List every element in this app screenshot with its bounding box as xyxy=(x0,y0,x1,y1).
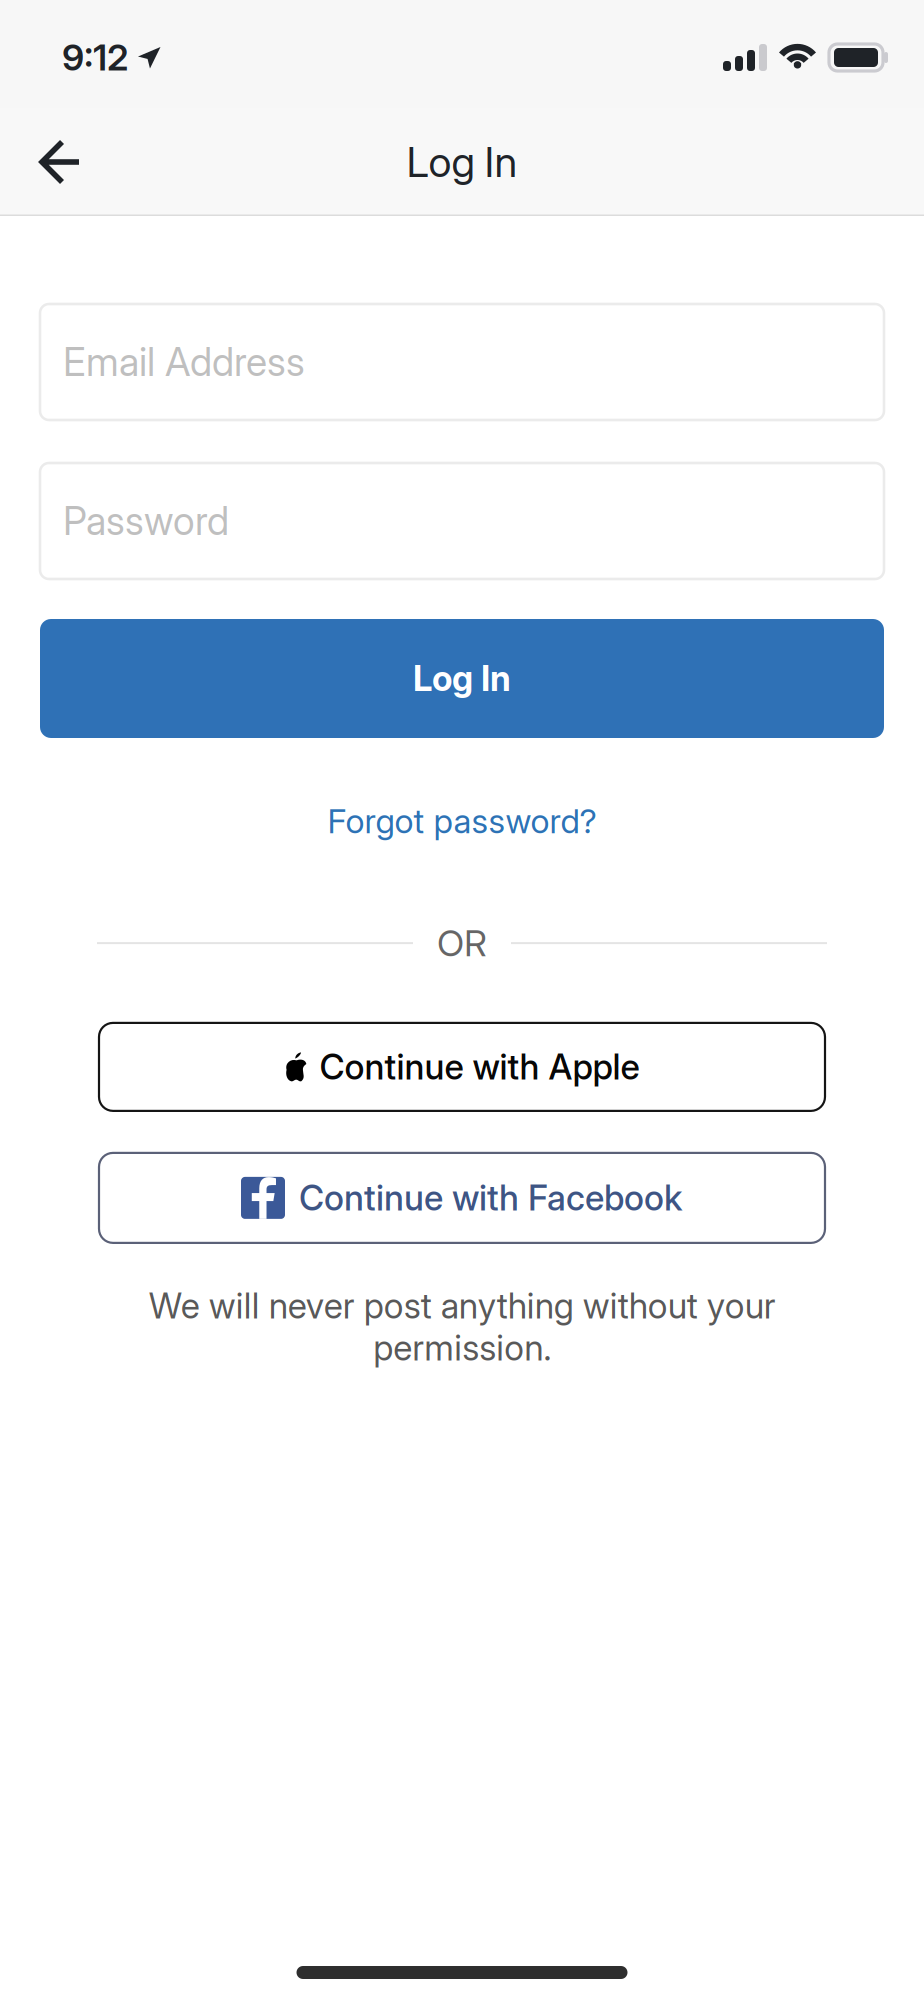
staticText: Log In xyxy=(413,657,511,699)
button[interactable]: Email Address xyxy=(40,304,884,420)
staticText: Forgot password? xyxy=(327,801,596,841)
button[interactable]: Continue with Facebook xyxy=(99,1153,825,1243)
staticText: Password xyxy=(63,498,229,544)
staticText: OR xyxy=(437,921,487,965)
staticText: 9:12 xyxy=(62,36,128,79)
button[interactable]: Forgot password? xyxy=(307,777,616,865)
button[interactable]: Log In xyxy=(40,619,884,738)
button[interactable]: Password xyxy=(40,463,884,579)
button[interactable]: Back xyxy=(0,114,110,210)
staticText: We will never post anything without your… xyxy=(148,1285,775,1369)
button[interactable]: Continue with Apple xyxy=(99,1023,825,1111)
staticText: Log In xyxy=(406,137,517,187)
staticText: Continue with Apple xyxy=(319,1046,639,1088)
staticText: Continue with Facebook xyxy=(299,1177,683,1219)
staticText: Email Address xyxy=(63,339,305,385)
